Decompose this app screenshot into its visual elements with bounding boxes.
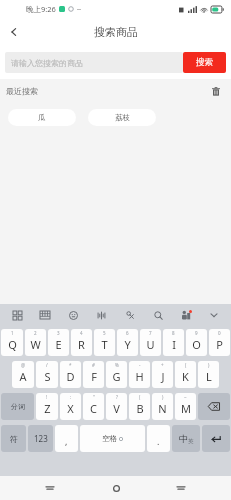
button[interactable]: 0 xyxy=(209,329,230,356)
staticText: 请输入您搜索的商品 xyxy=(11,58,83,68)
button[interactable]: Backspace xyxy=(198,393,230,420)
button[interactable]: Keyboard xyxy=(36,306,54,324)
staticText: 123 xyxy=(34,433,48,444)
button[interactable]: Emoji xyxy=(64,306,82,324)
button[interactable]: . xyxy=(147,425,170,452)
staticText: ( xyxy=(185,362,187,368)
button[interactable]: + xyxy=(152,361,173,388)
button[interactable]: - xyxy=(129,361,150,388)
staticText: 8 xyxy=(172,330,175,336)
staticText: V xyxy=(113,401,120,416)
staticText: 最近搜索 xyxy=(6,86,38,96)
staticText: 英 xyxy=(188,438,194,445)
button[interactable]: 请输入您搜索的商品 xyxy=(5,52,183,73)
button[interactable]: ~ xyxy=(175,393,196,420)
button[interactable]: 瓜 xyxy=(8,109,76,126)
staticText: % xyxy=(115,362,119,368)
button[interactable]: 8 xyxy=(163,329,184,356)
button[interactable]: " xyxy=(83,393,104,420)
button[interactable]: Back xyxy=(166,476,196,500)
button[interactable]: Recents xyxy=(35,476,65,500)
staticText: ) xyxy=(208,362,210,368)
staticText: ? xyxy=(116,394,118,400)
staticText: B xyxy=(136,401,144,416)
staticText: Y xyxy=(124,337,131,352)
button[interactable]: Voice xyxy=(92,306,110,324)
staticText: 7 xyxy=(149,330,152,336)
button[interactable]: ? xyxy=(106,393,127,420)
staticText: ) xyxy=(162,394,164,400)
staticText: . xyxy=(157,435,160,447)
staticText: * xyxy=(69,362,72,368)
staticText: : xyxy=(70,394,72,400)
button[interactable]: Collapse xyxy=(205,306,223,324)
staticText: I xyxy=(172,337,176,352)
button[interactable]: 4 xyxy=(71,329,92,356)
button[interactable]: Layouts xyxy=(8,306,26,324)
staticText: 4 xyxy=(80,330,83,336)
staticText: C xyxy=(90,401,97,416)
button[interactable]: Clear history xyxy=(208,83,224,99)
staticText: ( xyxy=(139,394,141,400)
staticText: 搜索 xyxy=(196,57,213,68)
button[interactable]: 搜索 xyxy=(183,52,226,73)
staticText: H xyxy=(135,369,144,384)
button[interactable]: ) xyxy=(152,393,173,420)
button[interactable]: 9 xyxy=(186,329,207,356)
button[interactable]: 6 xyxy=(117,329,138,356)
button[interactable]: Back xyxy=(0,18,28,46)
staticText: 分词 xyxy=(11,402,25,411)
staticText: Q xyxy=(8,337,17,352)
staticText: O xyxy=(192,337,201,352)
button[interactable]: Translate xyxy=(177,306,195,324)
button[interactable]: ( xyxy=(129,393,150,420)
staticText: - xyxy=(139,362,141,368)
staticText: L xyxy=(206,369,212,384)
button[interactable]: 3 xyxy=(48,329,69,356)
button[interactable]: 2 xyxy=(25,329,46,356)
staticText: U xyxy=(146,337,155,352)
button[interactable]: Home xyxy=(101,476,131,500)
button[interactable]: 7 xyxy=(140,329,161,356)
button[interactable]: / xyxy=(36,361,58,388)
staticText: M xyxy=(181,401,191,416)
staticText: S xyxy=(44,369,51,384)
button[interactable]: Search xyxy=(149,306,167,324)
staticText: 1 xyxy=(11,330,14,336)
staticText: 符 xyxy=(10,434,18,444)
staticText: F xyxy=(91,369,97,384)
button[interactable]: 123 xyxy=(28,425,53,452)
button[interactable]: @ xyxy=(12,361,34,388)
staticText: X xyxy=(67,401,74,416)
staticText: 6 xyxy=(126,330,129,336)
staticText: W xyxy=(30,337,41,352)
button[interactable]: # xyxy=(83,361,104,388)
button[interactable]: 空格 xyxy=(80,425,145,452)
button[interactable]: 5 xyxy=(94,329,115,356)
staticText: @ xyxy=(21,362,26,368)
staticText: P xyxy=(216,337,223,352)
staticText: E xyxy=(55,337,62,352)
button[interactable]: Enter xyxy=(202,425,230,452)
button[interactable]: ) xyxy=(198,361,219,388)
button[interactable]: : xyxy=(60,393,81,420)
button[interactable]: 1 xyxy=(1,329,23,356)
staticText: J xyxy=(161,369,165,384)
staticText: D xyxy=(66,369,75,384)
button[interactable]: Clipboard xyxy=(121,306,139,324)
staticText: 5 xyxy=(103,330,106,336)
button[interactable]: ( xyxy=(175,361,196,388)
button[interactable]: 分词 xyxy=(1,393,34,420)
button[interactable]: ! xyxy=(36,393,58,420)
staticText: , xyxy=(65,435,68,447)
button[interactable]: 荔枝 xyxy=(88,109,156,126)
staticText: R xyxy=(78,337,85,352)
staticText: 2 xyxy=(34,330,37,336)
button[interactable]: % xyxy=(106,361,127,388)
staticText: ~ xyxy=(184,394,187,400)
button[interactable]: , xyxy=(55,425,78,452)
button[interactable]: * xyxy=(60,361,81,388)
button[interactable]: 符 xyxy=(1,425,26,452)
button[interactable]: 中 xyxy=(172,425,200,452)
staticText: 0 xyxy=(218,330,221,336)
